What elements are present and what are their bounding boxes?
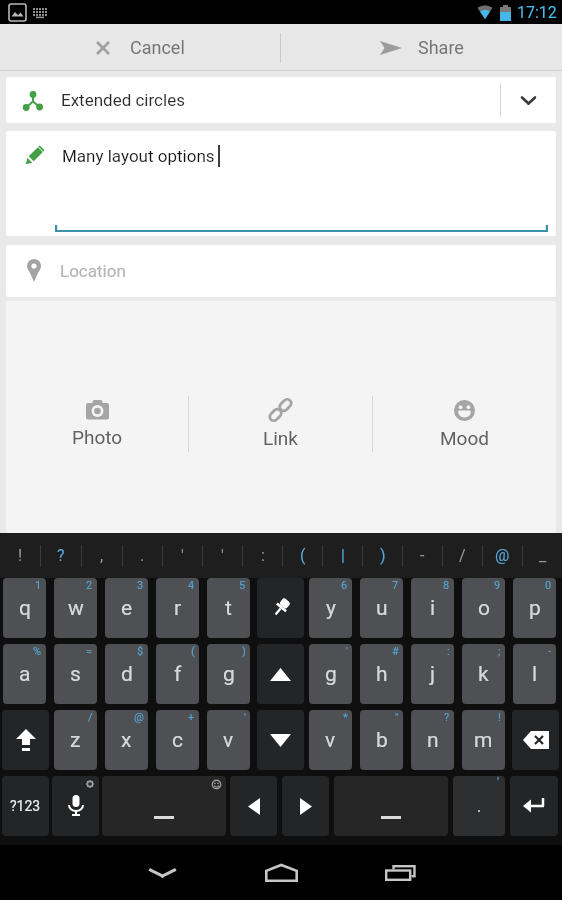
staticText: ': [497, 776, 500, 790]
button[interactable]: l: [513, 644, 556, 704]
staticText: r: [174, 596, 182, 621]
button[interactable]: [257, 710, 304, 770]
button[interactable]: [257, 578, 304, 638]
button[interactable]: e: [105, 578, 148, 638]
button[interactable]: x: [105, 710, 148, 770]
staticText: (: [191, 645, 195, 658]
button[interactable]: g: [207, 644, 250, 704]
button[interactable]: [510, 776, 558, 836]
staticText: d: [121, 662, 133, 687]
button[interactable]: [102, 776, 226, 836]
button[interactable]: ': [163, 533, 202, 578]
staticText: b: [376, 728, 388, 753]
button[interactable]: :: [243, 533, 282, 578]
button[interactable]: ?: [41, 533, 81, 578]
button[interactable]: |: [323, 533, 362, 578]
button[interactable]: [52, 776, 99, 836]
button[interactable]: r: [156, 578, 199, 638]
button[interactable]: Share: [281, 24, 562, 71]
button[interactable]: m: [462, 710, 505, 770]
button[interactable]: z: [54, 710, 97, 770]
button[interactable]: ': [203, 533, 242, 578]
button[interactable]: [257, 644, 304, 704]
button[interactable]: Photo: [6, 400, 188, 448]
button[interactable]: [334, 776, 448, 836]
button[interactable]: [222, 845, 341, 900]
button[interactable]: i: [411, 578, 454, 638]
button[interactable]: [282, 776, 329, 836]
staticText: v: [223, 728, 234, 753]
staticText: ?: [444, 711, 450, 724]
staticText: Location: [60, 261, 126, 281]
button[interactable]: [2, 710, 49, 770]
button[interactable]: [230, 776, 277, 836]
staticText: 7: [392, 579, 399, 592]
button[interactable]: !: [0, 533, 40, 578]
staticText: *: [343, 711, 348, 724]
button[interactable]: y: [309, 578, 352, 638]
button[interactable]: [341, 845, 460, 900]
button[interactable]: Extended circles: [6, 77, 556, 123]
button[interactable]: f: [156, 644, 199, 704]
staticText: ;: [498, 645, 501, 658]
button[interactable]: Link: [189, 399, 372, 449]
button[interactable]: v: [207, 710, 250, 770]
staticText: l: [532, 662, 538, 687]
button[interactable]: n: [411, 710, 454, 770]
staticText: 5: [239, 579, 246, 592]
button[interactable]: .: [123, 533, 162, 578]
staticText: ': [181, 546, 184, 565]
staticText: o: [478, 596, 490, 621]
staticText: q: [19, 596, 31, 621]
button[interactable]: @: [483, 533, 522, 578]
button[interactable]: p: [513, 578, 556, 638]
button[interactable]: b: [360, 710, 403, 770]
staticText: g: [223, 662, 235, 687]
button[interactable]: s: [54, 644, 97, 704]
button[interactable]: g: [309, 644, 352, 704]
button[interactable]: j: [411, 644, 454, 704]
button[interactable]: .: [453, 776, 505, 836]
button[interactable]: v: [309, 710, 352, 770]
staticText: ,: [100, 546, 104, 565]
button[interactable]: ?123: [2, 776, 49, 836]
staticText: 0: [545, 579, 552, 592]
button[interactable]: /: [443, 533, 482, 578]
button[interactable]: c: [156, 710, 199, 770]
staticText: -: [548, 645, 552, 658]
staticText: m: [474, 728, 493, 753]
staticText: ?123: [10, 798, 41, 814]
staticText: n: [427, 728, 439, 753]
staticText: s: [70, 662, 81, 687]
button[interactable]: Location: [6, 245, 556, 297]
button[interactable]: u: [360, 578, 403, 638]
button[interactable]: k: [462, 644, 505, 704]
button[interactable]: Mood: [373, 400, 556, 449]
button[interactable]: Cancel: [0, 24, 280, 71]
staticText: y: [326, 596, 336, 621]
staticText: z: [70, 728, 81, 753]
button[interactable]: [512, 710, 559, 770]
button[interactable]: ): [363, 533, 402, 578]
button[interactable]: w: [54, 578, 97, 638]
button[interactable]: -: [403, 533, 442, 578]
staticText: 6: [341, 579, 348, 592]
button[interactable]: h: [360, 644, 403, 704]
staticText: /: [459, 546, 466, 565]
button[interactable]: d: [105, 644, 148, 704]
staticText: Photo: [72, 426, 123, 448]
button[interactable]: Many layout options: [6, 131, 556, 236]
staticText: $: [137, 645, 144, 658]
button[interactable]: [103, 845, 222, 900]
staticText: ": [395, 711, 399, 724]
button[interactable]: (: [283, 533, 322, 578]
button[interactable]: q: [3, 578, 46, 638]
button[interactable]: t: [207, 578, 250, 638]
button[interactable]: o: [462, 578, 505, 638]
button[interactable]: a: [3, 644, 46, 704]
staticText: 2: [86, 579, 93, 592]
staticText: Link: [263, 427, 298, 449]
button[interactable]: _: [523, 533, 562, 578]
staticText: ': [346, 645, 348, 658]
button[interactable]: ,: [82, 533, 122, 578]
